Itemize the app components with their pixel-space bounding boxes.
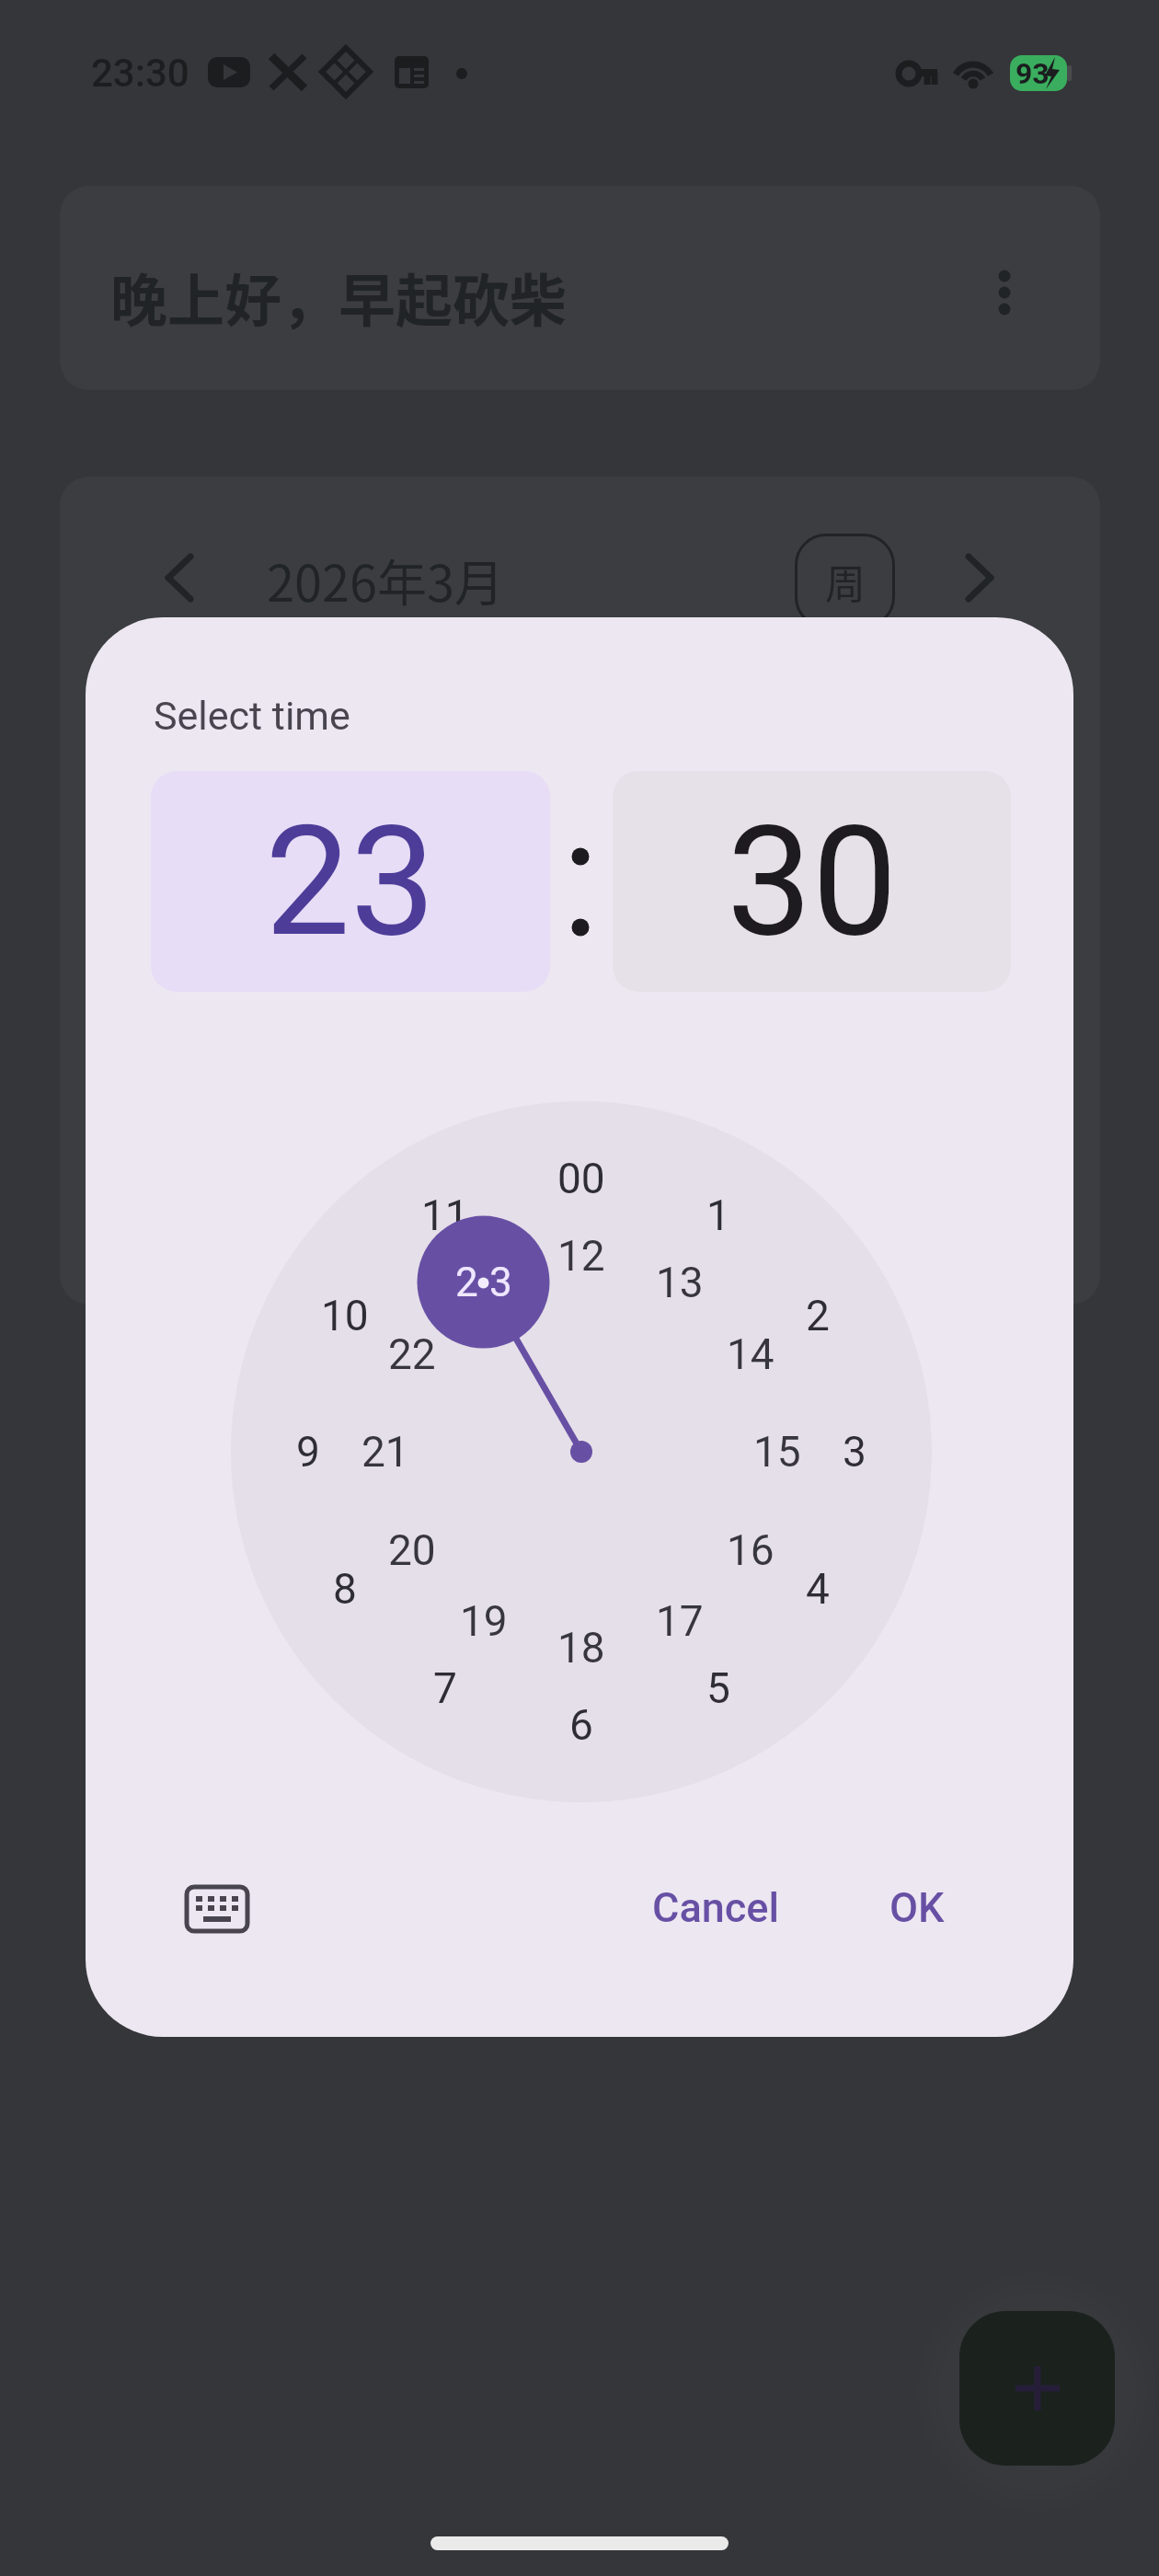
staticText: 30 — [727, 793, 898, 971]
staticText: OK — [889, 1883, 945, 1932]
staticText: 12 — [557, 1231, 605, 1281]
button[interactable]: 11 — [399, 1179, 491, 1252]
staticText: 3 — [489, 1259, 512, 1306]
button[interactable]: 19 — [438, 1584, 530, 1658]
button[interactable]: 20 — [366, 1513, 458, 1587]
button[interactable]: 00 — [535, 1142, 627, 1215]
staticText: 9 — [296, 1427, 320, 1477]
staticText: 00 — [557, 1154, 605, 1203]
button[interactable]: 23 — [151, 771, 550, 992]
button[interactable]: 16 — [705, 1513, 797, 1587]
staticText: 16 — [727, 1525, 775, 1575]
staticText: Select time — [154, 693, 350, 739]
staticText: 23:30 — [91, 51, 189, 96]
button[interactable]: 22 — [366, 1317, 458, 1391]
button[interactable]: 9 — [262, 1415, 354, 1489]
button[interactable]: 4 — [772, 1552, 864, 1626]
staticText: 晚上好，早起砍柴 — [110, 256, 568, 339]
staticText: 23 — [265, 793, 436, 971]
staticText: 4 — [806, 1564, 830, 1614]
staticText: 6 — [569, 1700, 593, 1750]
staticText: 11 — [421, 1190, 469, 1240]
staticText: 2 — [806, 1291, 830, 1340]
button[interactable]: 1 — [672, 1179, 764, 1252]
staticText: 18 — [557, 1623, 605, 1673]
button[interactable]: 14 — [705, 1317, 797, 1391]
button[interactable]: 2 — [772, 1279, 864, 1352]
staticText: 7 — [433, 1663, 457, 1713]
button[interactable]: 30 — [613, 771, 1011, 992]
staticText: 8 — [333, 1564, 357, 1614]
staticText: 周 — [825, 552, 866, 611]
button[interactable]: 21 — [339, 1415, 431, 1489]
button[interactable]: 5 — [672, 1651, 764, 1725]
button[interactable]: OK — [834, 1861, 1000, 1953]
staticText: 3 — [843, 1427, 866, 1477]
button[interactable]: 8 — [299, 1552, 391, 1626]
button[interactable]: 18 — [535, 1611, 627, 1685]
button[interactable]: 10 — [299, 1279, 391, 1352]
staticText: 93 — [1016, 56, 1050, 91]
button[interactable]: 2 — [418, 1216, 550, 1349]
staticText: 20 — [388, 1525, 436, 1575]
staticText: 22 — [388, 1329, 436, 1379]
button[interactable]: 13 — [634, 1246, 726, 1319]
button[interactable]: 17 — [634, 1584, 726, 1658]
button[interactable]: 15 — [731, 1415, 823, 1489]
button[interactable] — [959, 2311, 1115, 2466]
staticText: 19 — [460, 1596, 508, 1646]
button[interactable]: 7 — [399, 1651, 491, 1725]
staticText: 5 — [706, 1663, 730, 1713]
button[interactable] — [187, 1887, 247, 1931]
button[interactable]: Cancel — [614, 1861, 817, 1953]
staticText: 15 — [753, 1427, 801, 1477]
staticText: 2 — [455, 1259, 478, 1306]
staticText: 10 — [321, 1291, 369, 1340]
staticText: 2026年3月 — [267, 544, 504, 615]
staticText: 1 — [706, 1190, 730, 1240]
button[interactable]: 3 — [809, 1415, 901, 1489]
staticText: 14 — [727, 1329, 775, 1379]
staticText: 17 — [656, 1596, 704, 1646]
button[interactable]: 6 — [535, 1688, 627, 1762]
staticText: Cancel — [652, 1883, 780, 1932]
staticText: 21 — [361, 1427, 409, 1477]
button[interactable]: 12 — [535, 1219, 627, 1293]
staticText: 13 — [656, 1258, 704, 1307]
